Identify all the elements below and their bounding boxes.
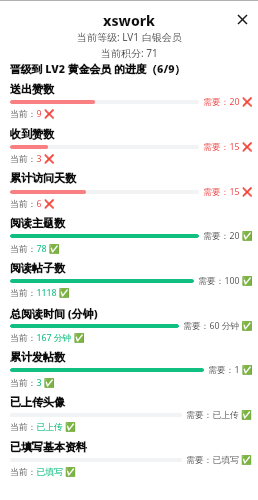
- staticText: 需要：1 ✅: [208, 364, 253, 376]
- staticText: 需要：已填写 ✅: [186, 454, 253, 466]
- staticText: 阅读主题数: [10, 216, 65, 230]
- staticText: 当前积分: 71: [101, 46, 158, 60]
- staticText: 需要：60 分钟 ✅: [183, 320, 253, 332]
- staticText: 当前：6 ❌: [10, 198, 55, 210]
- staticText: 送出赞数: [10, 82, 54, 96]
- button[interactable]: Close: [230, 7, 254, 31]
- staticText: 当前：已上传 ✅: [10, 421, 77, 433]
- staticText: 累计访问天数: [10, 171, 76, 185]
- staticText: 累计发帖数: [10, 350, 65, 364]
- staticText: 已填写基本资料: [10, 440, 87, 454]
- staticText: 需要：100 ✅: [198, 275, 253, 287]
- staticText: xswork: [103, 11, 156, 30]
- staticText: 需要：20 ✅: [203, 230, 253, 242]
- staticText: 需要：20 ❌: [203, 96, 253, 108]
- staticText: 当前：1118 ✅: [10, 287, 70, 299]
- staticText: 当前等级: LV1 白银会员: [77, 30, 182, 44]
- staticText: 晋级到 LV2 黄金会员 的进度（6/9）: [10, 61, 186, 76]
- staticText: 当前：3 ✅: [10, 377, 55, 389]
- staticText: 收到赞数: [10, 127, 54, 141]
- staticText: 已上传头像: [10, 395, 65, 409]
- staticText: 当前：已填写 ✅: [10, 466, 77, 478]
- staticText: 当前：78 ✅: [10, 243, 60, 255]
- staticText: 需要：15 ❌: [203, 141, 253, 153]
- staticText: 当前：167 分钟 ✅: [10, 332, 85, 344]
- staticText: 需要：15 ❌: [203, 186, 253, 198]
- staticText: 阅读帖子数: [10, 261, 65, 275]
- staticText: 总阅读时间 (分钟): [10, 306, 98, 321]
- staticText: 当前：3 ❌: [10, 153, 55, 165]
- staticText: 当前：9 ❌: [10, 108, 55, 120]
- staticText: 需要：已上传 ✅: [186, 409, 253, 421]
